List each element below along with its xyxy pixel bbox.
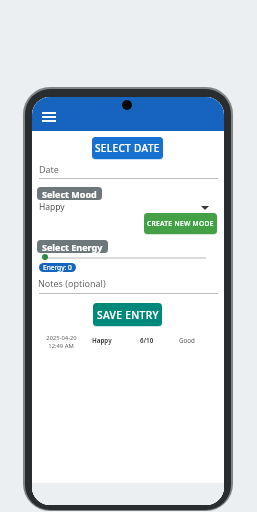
staticText: Energy: 0 [43, 263, 72, 272]
staticText: SAVE ENTRY [97, 308, 159, 322]
button[interactable]: Select Energy [37, 240, 108, 253]
staticText: 2025-04-20 [46, 334, 77, 342]
staticText: Happy [39, 201, 65, 213]
button[interactable]: Select Mood [37, 187, 102, 200]
staticText: CREATE NEW MODE [147, 219, 214, 228]
staticText: SELECT DATE [95, 141, 160, 155]
button[interactable]: Open navigation menu [36, 104, 62, 130]
button[interactable]: Energy slider [42, 254, 48, 260]
button[interactable]: CREATE NEW MODE [144, 213, 217, 234]
button[interactable]: SAVE ENTRY [93, 303, 162, 326]
button[interactable]: SELECT DATE [92, 137, 163, 159]
staticText: Happy [92, 336, 112, 344]
staticText: 12:49 AM [48, 342, 74, 350]
staticText: Select Mood [42, 188, 97, 200]
staticText: Date [39, 163, 59, 175]
button[interactable]: 2025-04-20 [32, 331, 224, 347]
staticText: Notes (optional) [38, 277, 106, 289]
staticText: Good [179, 336, 195, 344]
staticText: Select Energy [42, 241, 103, 253]
staticText: 6/10 [140, 336, 154, 344]
